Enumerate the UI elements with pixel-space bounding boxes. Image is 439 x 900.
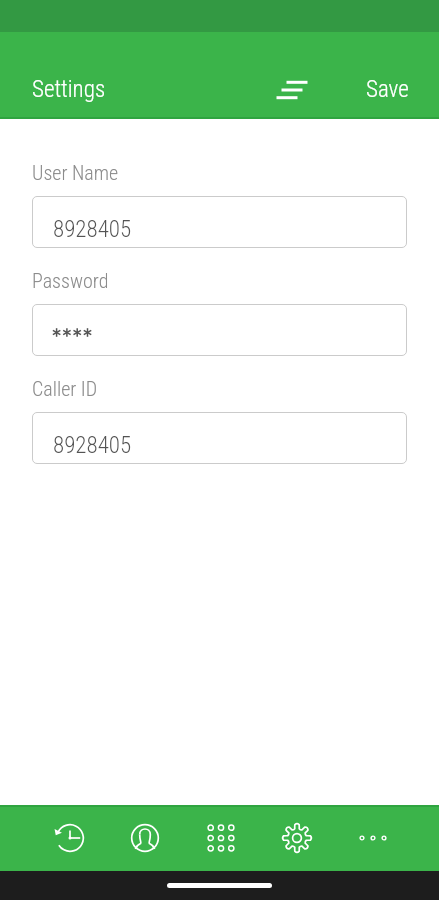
staticText: Password (32, 269, 109, 292)
staticText: 8928405 (53, 432, 132, 459)
staticText: Save (366, 76, 409, 103)
staticText: 8928405 (53, 216, 132, 243)
staticText: Settings (32, 76, 106, 103)
staticText: Caller ID (32, 377, 98, 400)
button[interactable]: More (335, 805, 411, 871)
button[interactable]: Sort (268, 66, 316, 114)
button[interactable]: History (32, 805, 107, 871)
button[interactable]: 8928405 (32, 412, 407, 464)
button[interactable]: Keypad (183, 805, 259, 871)
button[interactable]: Account (107, 805, 183, 871)
button[interactable]: Settings (259, 805, 335, 871)
button[interactable] (32, 304, 407, 356)
button[interactable]: Save (336, 60, 439, 119)
staticText: User Name (32, 161, 119, 184)
button[interactable]: 8928405 (32, 196, 407, 248)
